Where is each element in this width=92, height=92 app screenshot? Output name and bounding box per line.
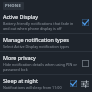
button[interactable]: Enabled xyxy=(69,79,78,88)
staticText: Hide notification details when using PIN… xyxy=(3,62,79,72)
button[interactable]: Disabled xyxy=(81,59,90,68)
button[interactable]: Enabled xyxy=(81,18,90,27)
button[interactable]: More privacy xyxy=(0,52,92,74)
button[interactable]: Settings xyxy=(80,79,90,89)
staticText: Sleep at night xyxy=(3,77,38,84)
staticText: Notifications will sleep from 11:00 pm t… xyxy=(3,85,67,90)
staticText: Active Display xyxy=(3,13,38,20)
staticText: PHONE xyxy=(5,3,22,9)
staticText: Battery-friendly notifications that fade… xyxy=(3,21,79,31)
button[interactable]: Active Display xyxy=(0,11,92,33)
staticText: Select Active Display notification types xyxy=(3,44,69,49)
staticText: More privacy xyxy=(3,54,36,61)
button[interactable]: Manage notification types xyxy=(0,34,92,51)
button[interactable]: Sleep at night xyxy=(0,75,92,92)
staticText: Manage notification types xyxy=(3,36,69,43)
